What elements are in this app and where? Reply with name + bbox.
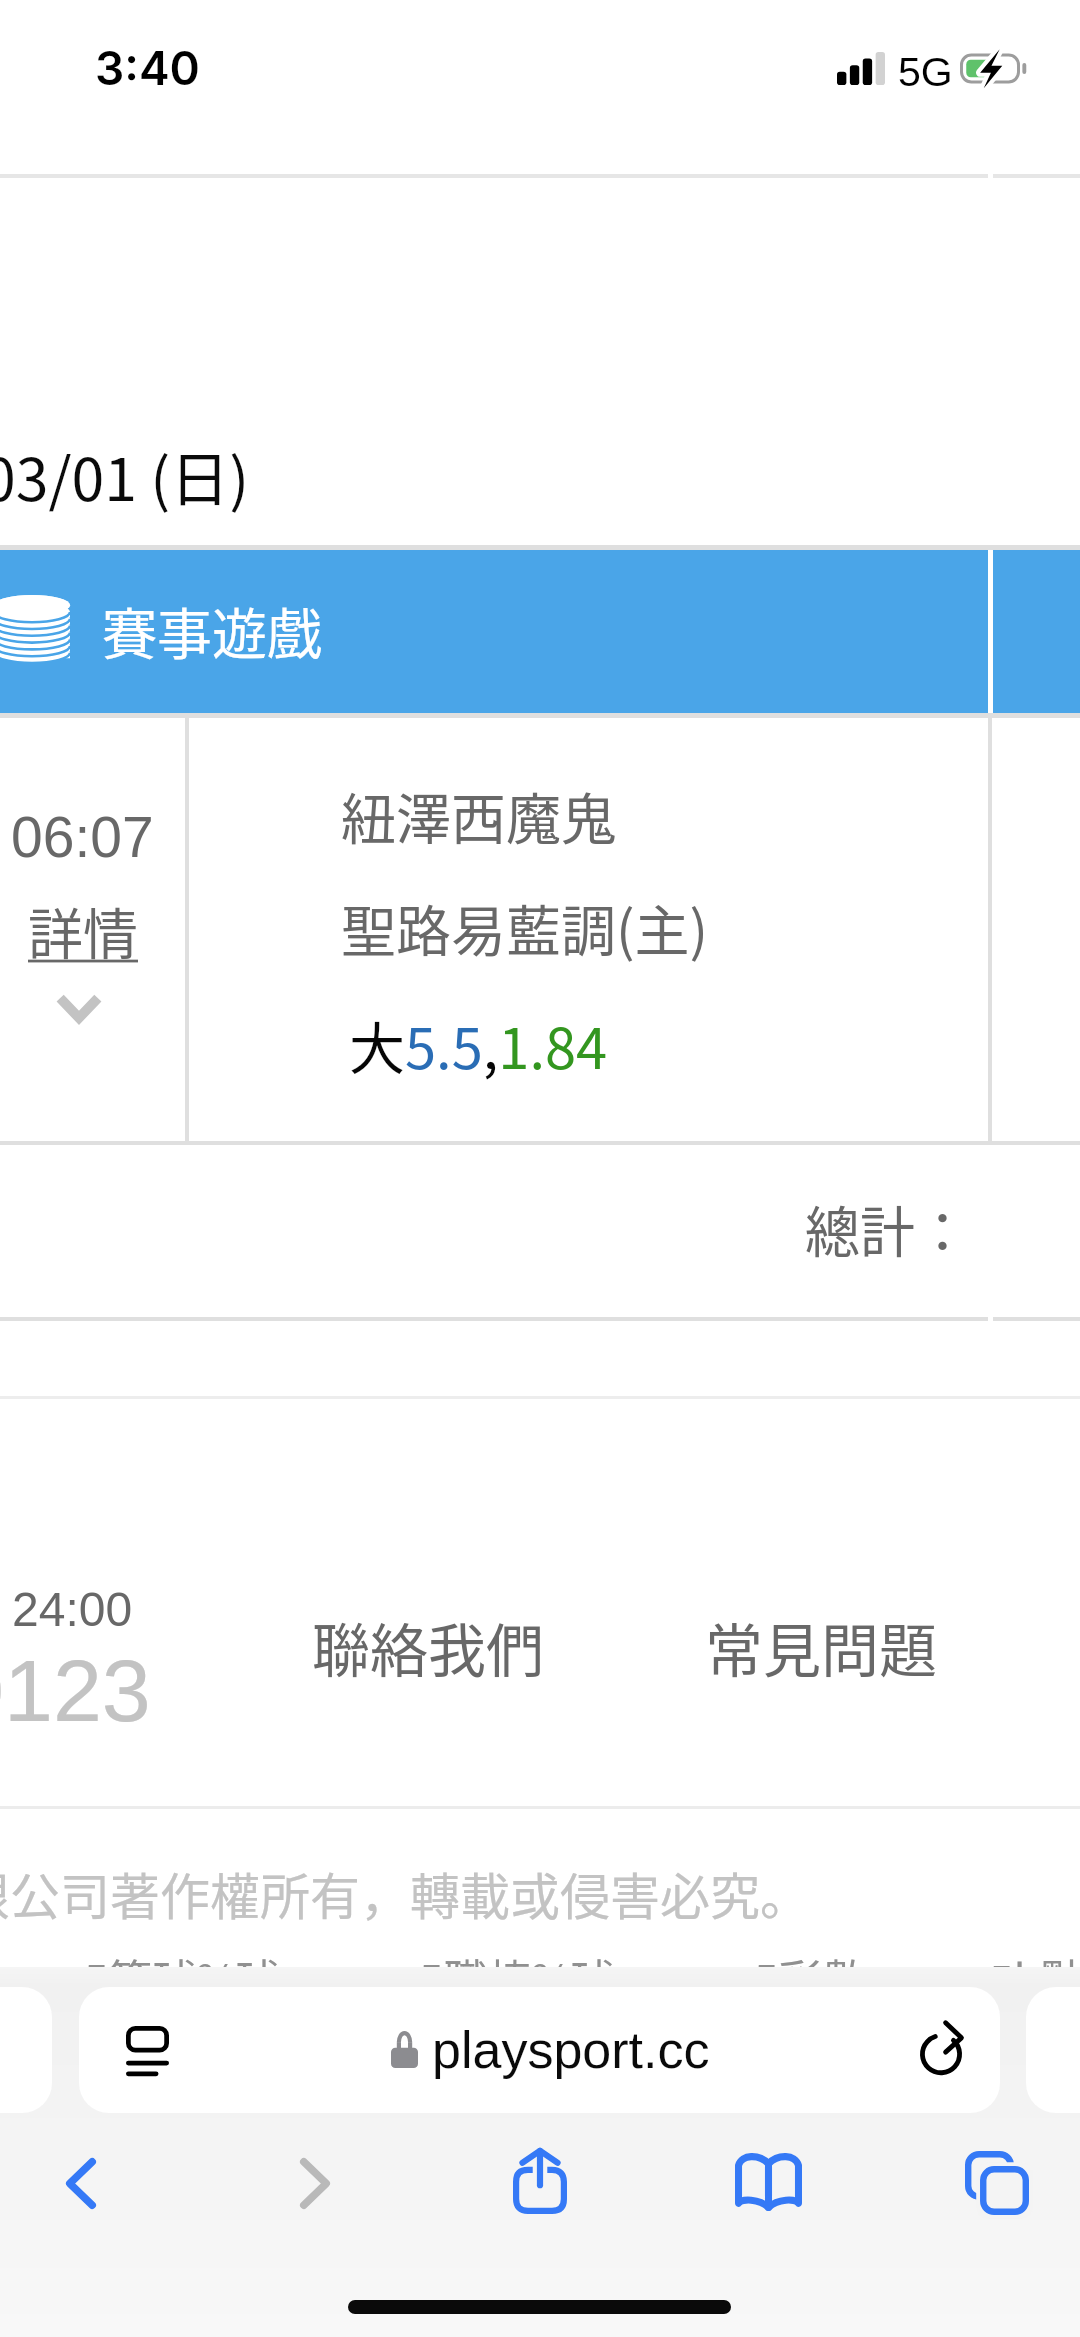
staticText: 03/01 (日): [0, 433, 250, 518]
staticText: 5G: [898, 49, 953, 95]
staticText: 0123: [0, 1641, 151, 1739]
staticText: 5彩數: [754, 1946, 867, 2010]
button[interactable]: [79, 1987, 1000, 2113]
staticText: 賽事遊戲: [102, 590, 323, 670]
staticText: 詳情: [28, 890, 139, 970]
staticText: 5h點數: [989, 1946, 1080, 2010]
staticText: 聯絡我們: [312, 1605, 545, 1689]
staticText: 3:40: [95, 40, 200, 96]
button[interactable]: Tabs: [888, 2123, 1080, 2243]
button[interactable]: Forward: [207, 2123, 423, 2243]
staticText: 06:07: [11, 805, 154, 869]
staticText: 常見問題: [705, 1605, 938, 1689]
staticText: 大5.5,1.84: [349, 1004, 608, 1085]
button[interactable]: Page settings: [97, 2001, 197, 2101]
staticText: 5職棒¾球: [419, 1946, 615, 2010]
staticText: 紐澤西魔鬼: [341, 775, 617, 855]
button[interactable]: Bookmarks: [660, 2121, 876, 2241]
staticText: 5籃球¾球: [84, 1946, 280, 2010]
staticText: playsport.cc: [432, 2021, 710, 2079]
button[interactable]: Back: [0, 2123, 174, 2243]
button[interactable]: Reload: [886, 1993, 996, 2103]
staticText: 24:00: [12, 1583, 133, 1637]
staticText: 總計：: [805, 1188, 971, 1268]
staticText: 限公司著作權所有，轉載或侵害必究。: [0, 1857, 810, 1929]
staticText: 聖路易藍調(主): [341, 887, 709, 967]
button[interactable]: Share: [432, 2123, 648, 2243]
